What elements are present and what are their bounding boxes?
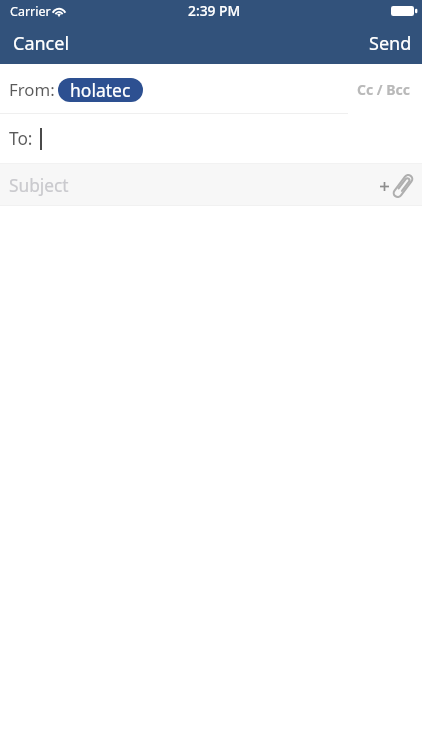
button[interactable]: To: <box>0 114 422 163</box>
staticText: Cc / Bcc <box>357 80 411 99</box>
button[interactable]: Add attachment <box>373 171 418 199</box>
staticText: To: <box>9 127 33 151</box>
staticText: From: <box>9 78 55 101</box>
button[interactable]: Cc / Bcc <box>355 74 413 105</box>
staticText: Carrier <box>10 3 51 20</box>
staticText: 2:39 PM <box>188 1 241 20</box>
staticText: Cancel <box>13 31 70 56</box>
staticText: Subject <box>9 174 69 198</box>
button[interactable]: Subject <box>9 164 373 206</box>
button[interactable]: Cancel <box>0 23 83 64</box>
button[interactable]: Send <box>356 23 422 64</box>
staticText: holatec <box>70 78 131 102</box>
staticText: Send <box>369 31 412 56</box>
button[interactable]: holatec <box>58 78 143 102</box>
